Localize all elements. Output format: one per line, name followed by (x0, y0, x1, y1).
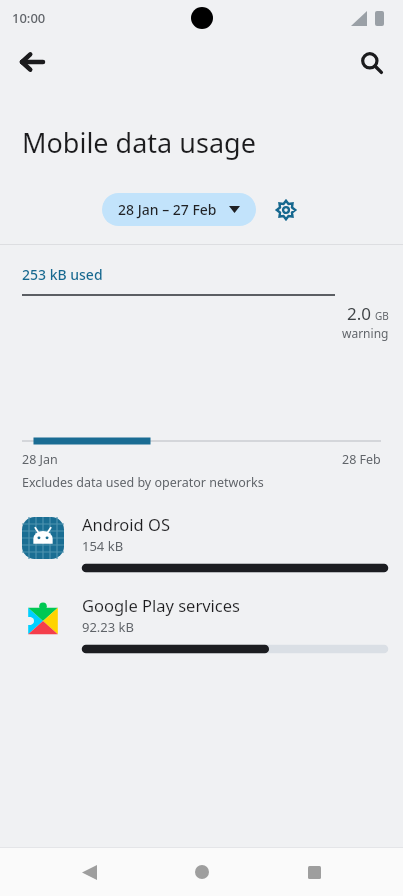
button[interactable]: Back (10, 40, 54, 84)
staticText: 154 kB (82, 537, 124, 555)
button[interactable]: Back (65, 848, 113, 896)
staticText: 28 Jan – 27 Feb (118, 200, 217, 219)
staticText: Google Play services (82, 594, 240, 616)
button[interactable]: Settings (270, 194, 302, 226)
staticText: 92.23 kB (82, 618, 135, 636)
button[interactable]: Google Play services (0, 594, 403, 653)
button[interactable]: 28 Jan – 27 Feb (102, 193, 256, 226)
staticText: 2.0 (347, 302, 372, 325)
staticText: warning (342, 325, 389, 341)
staticText: 28 Feb (342, 451, 381, 468)
staticText: 10:00 (12, 9, 46, 27)
button[interactable]: Search (349, 40, 393, 84)
button[interactable]: Home (178, 848, 226, 896)
button[interactable]: Recents (290, 848, 338, 896)
button[interactable]: Android OS (0, 513, 403, 572)
staticText: Mobile data usage (22, 124, 256, 161)
staticText: Android OS (82, 513, 170, 535)
staticText: Excludes data used by operator networks (22, 474, 264, 491)
staticText: GB (375, 309, 389, 323)
staticText: 253 kB used (22, 265, 103, 284)
staticText: 28 Jan (22, 451, 58, 468)
